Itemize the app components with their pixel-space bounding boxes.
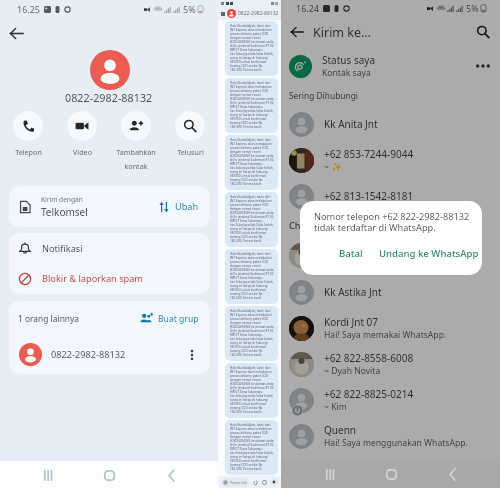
staticText: tidak terdaftar di WhatsApp. bbox=[314, 221, 436, 234]
staticText: Video bbox=[73, 147, 92, 157]
staticText: Buat grup bbox=[158, 313, 199, 325]
staticText: 0822-2982-88132 bbox=[65, 90, 153, 105]
button[interactable]: Telepon bbox=[2, 111, 54, 157]
button[interactable]: Kirim dengan bbox=[9, 186, 210, 227]
button[interactable]: Back bbox=[286, 21, 308, 43]
button[interactable]: Back bbox=[441, 463, 463, 485]
staticText: Quenn bbox=[324, 423, 356, 437]
staticText: 0822-2982-88132 bbox=[238, 10, 278, 17]
staticText: Kirim dengan bbox=[41, 195, 83, 204]
button[interactable]: Back bbox=[220, 11, 226, 17]
staticText: Hai! Saya memakai WhatsApp. bbox=[324, 256, 447, 268]
staticText: Kk Anita Jnt bbox=[324, 117, 378, 131]
staticText: Blokir & laporkan spam bbox=[42, 272, 143, 285]
button[interactable]: Search bbox=[472, 21, 494, 43]
staticText: Halo Bunda/Ayah, kami dari JNT Express a… bbox=[230, 81, 275, 129]
staticText: Status saya bbox=[322, 53, 375, 67]
staticText: Telusuri bbox=[177, 147, 204, 157]
staticText: Chat bbox=[289, 219, 309, 231]
button[interactable]: Batal bbox=[331, 243, 371, 264]
button[interactable]: Attach bbox=[252, 479, 259, 486]
button[interactable]: Home bbox=[380, 463, 402, 485]
staticText: Ubah bbox=[175, 200, 199, 213]
staticText: Kirim ke… bbox=[313, 24, 371, 41]
staticText: +62 822-8558-6008 bbox=[324, 351, 414, 365]
button[interactable]: Cindy Jnt bbox=[281, 236, 500, 274]
staticText: Halo Bunda/Ayah, kami dari JNT Express a… bbox=[230, 252, 275, 300]
button[interactable]: Pesan teks bbox=[221, 478, 249, 487]
staticText: Halo Bunda/Ayah, kami dari JNT Express a… bbox=[230, 138, 275, 186]
button[interactable]: Recent apps bbox=[318, 463, 340, 485]
button[interactable]: Buat grup bbox=[140, 312, 199, 325]
button[interactable]: +62 853-7244-9044 bbox=[281, 142, 500, 178]
staticText: Telepon bbox=[15, 147, 42, 157]
button[interactable]: +62 822-8825-0214 bbox=[281, 382, 500, 418]
button[interactable]: Undang ke WhatsApp bbox=[371, 243, 482, 264]
staticText: 0822-2982-88132 bbox=[51, 348, 126, 361]
button[interactable]: Back bbox=[4, 21, 28, 45]
staticText: Telkomsel bbox=[41, 205, 88, 219]
button[interactable]: +62 813-1542-8181 bbox=[281, 178, 500, 214]
staticText: Pesan teks bbox=[230, 480, 247, 485]
staticText: Halo Bunda/Ayah, kami dari JNT Express a… bbox=[230, 366, 275, 414]
staticText: Halo Bunda/Ayah, kami dari JNT Express a… bbox=[230, 309, 275, 357]
button[interactable]: Telusuri bbox=[164, 111, 216, 157]
staticText: Sering Dihubungi bbox=[289, 90, 359, 101]
staticText: Notifikasi bbox=[42, 242, 83, 255]
staticText: Hai! Saya memakai WhatsApp. bbox=[324, 329, 447, 341]
staticText: Kk Astika Jnt bbox=[324, 285, 382, 299]
button[interactable]: Video bbox=[56, 111, 108, 157]
staticText: Halo Bunda/Ayah, kami dari JNT Express a… bbox=[230, 24, 275, 72]
staticText: 16.25 bbox=[17, 3, 41, 15]
staticText: 1 orang lainnya bbox=[18, 313, 79, 324]
button[interactable]: Emoji bbox=[261, 479, 268, 486]
button[interactable]: More options bbox=[185, 348, 199, 362]
staticText: ~ ✨ bbox=[324, 161, 342, 173]
staticText: Halo Bunda/Ayah, kami dari JNT Express a… bbox=[230, 195, 275, 243]
button[interactable]: Blokir & laporkan spam bbox=[9, 263, 210, 294]
button[interactable]: Recent apps bbox=[36, 464, 58, 486]
button[interactable]: Notifikasi bbox=[9, 233, 210, 263]
button[interactable]: Kk Anita Jnt bbox=[281, 106, 500, 142]
staticText: 16.24 bbox=[296, 2, 320, 14]
staticText: Undang ke WhatsApp bbox=[379, 247, 479, 260]
staticText: Kontak saya bbox=[322, 67, 371, 79]
staticText: Halo Bunda/Ayah, kami dari JNT Express a… bbox=[230, 423, 275, 471]
button[interactable]: Kordi Jnt 07 bbox=[281, 310, 500, 346]
staticText: ~ Kim bbox=[324, 401, 347, 413]
staticText: 5% bbox=[183, 3, 196, 15]
button[interactable]: 0822-2982-88132 bbox=[9, 335, 210, 374]
button[interactable]: Quenn bbox=[281, 418, 500, 454]
staticText: +62 813-1542-8181 bbox=[324, 189, 414, 203]
staticText: +62 853-7244-9044 bbox=[324, 147, 414, 161]
button[interactable]: +62 822-8558-6008 bbox=[281, 346, 500, 382]
staticText: Kordi Jnt 07 bbox=[324, 315, 379, 329]
staticText: 5% bbox=[466, 2, 479, 14]
button[interactable]: Tambahkan kontak bbox=[110, 111, 162, 171]
button[interactable]: More options bbox=[474, 57, 492, 75]
staticText: +62 822-8825-0214 bbox=[324, 387, 414, 401]
staticText: Cindy Jnt bbox=[324, 242, 366, 256]
staticText: Batal bbox=[339, 247, 363, 260]
staticText: Nomor telepon +62 822-2982-88132 bbox=[314, 210, 470, 223]
staticText: Hai! Saya menggunakan WhatsApp. bbox=[324, 437, 468, 449]
button[interactable]: Home bbox=[98, 464, 120, 486]
button[interactable]: Kk Astika Jnt bbox=[281, 274, 500, 310]
button[interactable]: Status saya bbox=[281, 48, 500, 84]
staticText: Tambahkan kontak bbox=[116, 147, 156, 171]
button[interactable]: Back bbox=[160, 464, 182, 486]
button[interactable]: Send bbox=[270, 478, 278, 486]
staticText: ~ Dyah Novita bbox=[324, 365, 381, 377]
